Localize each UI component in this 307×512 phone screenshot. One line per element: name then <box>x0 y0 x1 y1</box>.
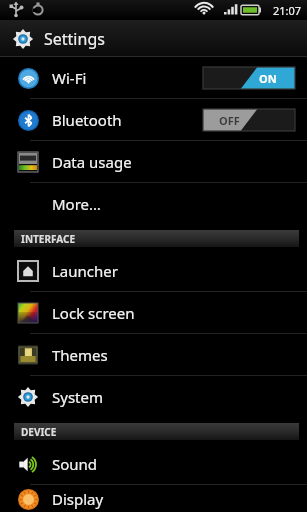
staticText: Launcher <box>52 261 118 281</box>
button[interactable]: Data usage <box>0 141 307 182</box>
staticText: Bluetooth <box>52 110 122 130</box>
button[interactable]: Launcher <box>0 250 307 291</box>
button[interactable]: Display <box>0 485 307 512</box>
staticText: Sound <box>52 454 98 474</box>
button[interactable]: Lock screen <box>0 292 307 333</box>
button[interactable]: Sound <box>0 443 307 484</box>
staticText: OFF <box>219 113 240 128</box>
staticText: Display <box>52 489 104 509</box>
staticText: 21:07 <box>273 3 302 18</box>
staticText: Lock screen <box>52 303 135 323</box>
button[interactable]: System <box>0 376 307 417</box>
button[interactable]: Bluetooth <box>0 99 307 140</box>
button[interactable]: Themes <box>0 334 307 375</box>
button[interactable]: More… <box>0 183 307 224</box>
staticText: Wi-Fi <box>52 68 87 88</box>
staticText: System <box>52 387 103 407</box>
staticText: Themes <box>52 345 108 365</box>
button[interactable]: Toggle on <box>203 67 295 89</box>
staticText: ON <box>259 71 277 86</box>
staticText: INTERFACE <box>21 232 75 246</box>
staticText: Settings <box>44 28 105 50</box>
staticText: DEVICE <box>21 425 57 439</box>
staticText: Data usage <box>52 152 132 172</box>
button[interactable]: Toggle off <box>203 109 295 131</box>
button[interactable]: Wi-Fi <box>0 57 307 98</box>
staticText: More… <box>52 194 101 214</box>
